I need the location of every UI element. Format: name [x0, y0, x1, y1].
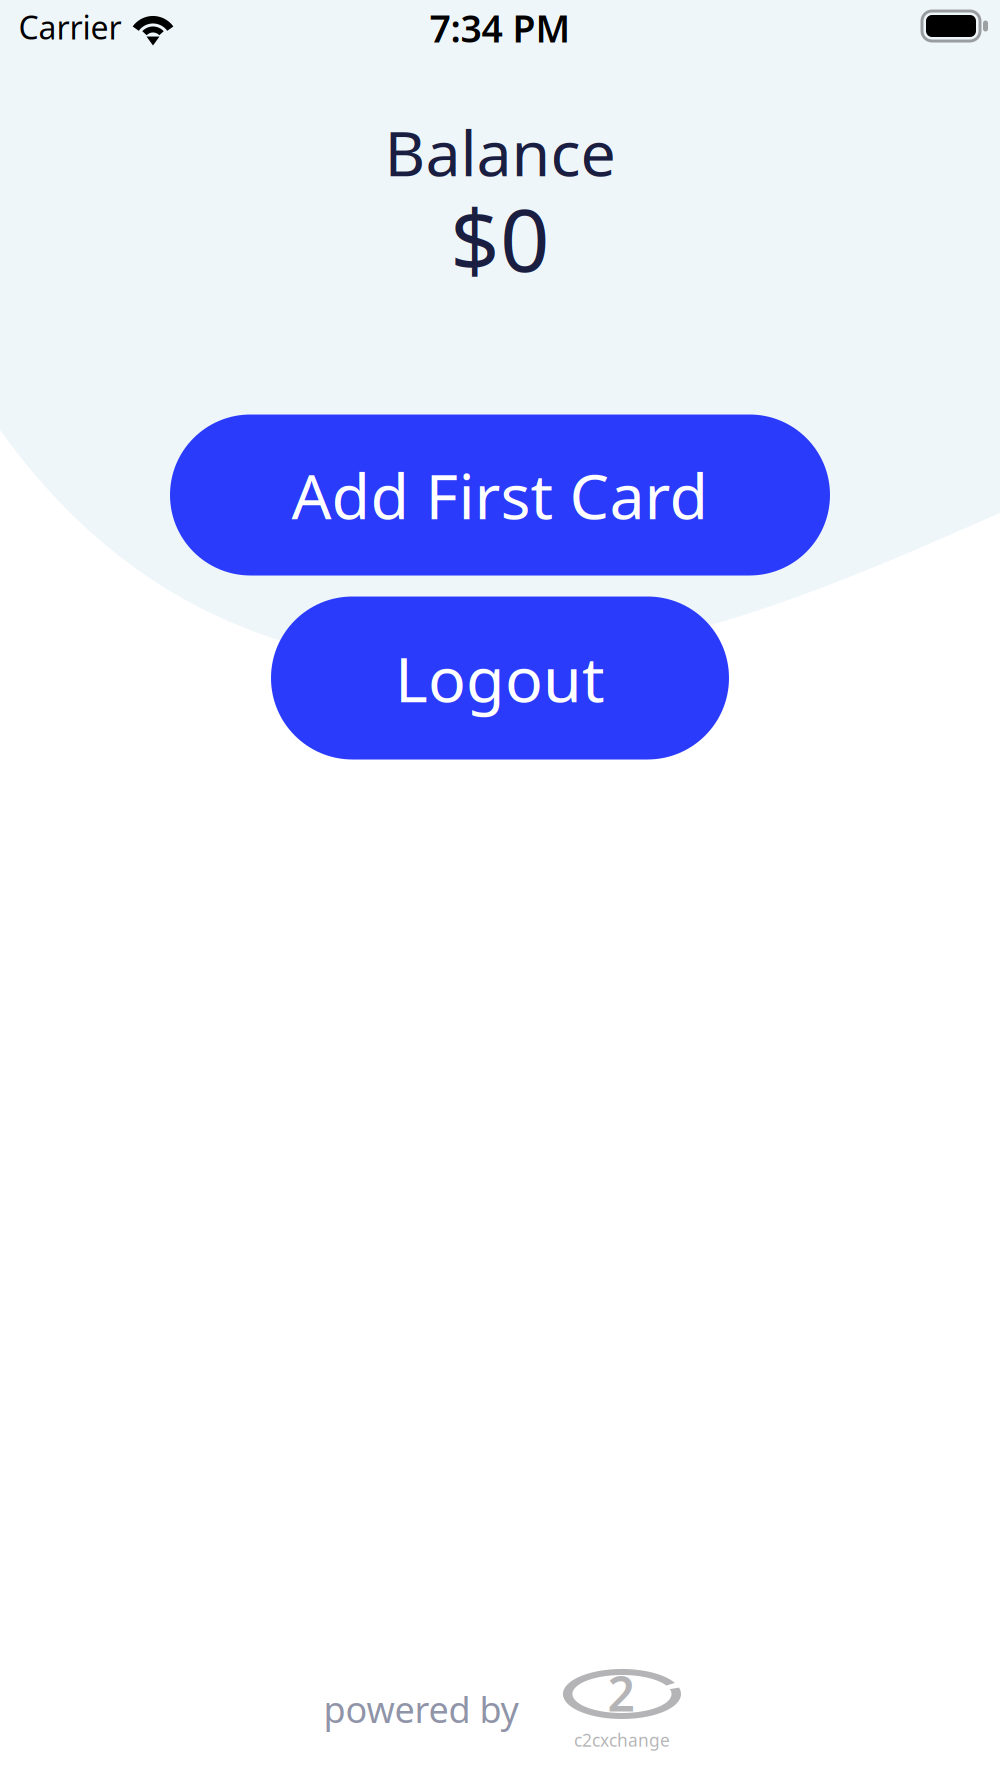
- staticText: $0: [450, 180, 550, 296]
- button[interactable]: Add First Card: [170, 414, 830, 575]
- button[interactable]: Logout: [271, 596, 729, 759]
- staticText: c2cxchange: [574, 1728, 670, 1751]
- staticText: 7:34 PM: [429, 3, 570, 53]
- staticText: Logout: [395, 636, 605, 720]
- staticText: powered by: [323, 1685, 518, 1733]
- staticText: Balance: [384, 110, 615, 194]
- staticText: Carrier: [18, 6, 121, 48]
- staticText: Add First Card: [291, 453, 708, 537]
- staticText: 2: [607, 1661, 634, 1725]
